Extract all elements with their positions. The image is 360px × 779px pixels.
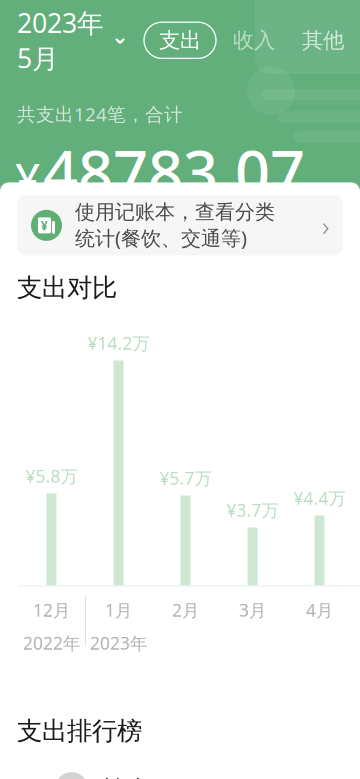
staticText: 2022年 (23, 631, 80, 654)
staticText: 2023年 (90, 631, 147, 654)
button[interactable]: 1 (0, 753, 360, 779)
staticText: 4月 (306, 598, 333, 621)
button[interactable]: 其他 (292, 27, 354, 53)
staticText: ¥5.8万 (25, 464, 77, 487)
staticText: 2月 (172, 598, 199, 621)
staticText: 支出对比 (17, 272, 117, 303)
staticText: ¥ (40, 216, 48, 234)
button[interactable]: 支出 (144, 22, 216, 58)
staticText: 支出排行榜 (17, 715, 142, 747)
staticText: ¥14.2万 (87, 331, 149, 354)
button[interactable]: ¥ (17, 195, 343, 255)
staticText: 使用记账本，查看分类统计(餐饮、交通等) (75, 200, 275, 251)
button[interactable]: 收入 (216, 27, 292, 53)
staticText: 2023年5月 (17, 5, 104, 76)
staticText: › (322, 207, 329, 244)
staticText: 48783.07 (43, 130, 305, 212)
staticText: ¥ (15, 149, 40, 207)
staticText: ¥4.4万 (293, 486, 345, 509)
staticText: ⌄ (111, 24, 129, 48)
staticText: 其他 (302, 27, 344, 53)
staticText: ¥5.7万 (159, 466, 211, 489)
staticText: 3月 (239, 598, 266, 621)
staticText: ¥3.7万 (226, 498, 278, 521)
staticText: 收入 (233, 27, 275, 53)
button[interactable]: 2023年5月 (17, 5, 129, 76)
staticText: 12月 (33, 598, 70, 621)
staticText: 1月 (105, 598, 132, 621)
staticText: 转账 (102, 775, 148, 779)
staticText: 支出 (159, 27, 201, 53)
staticText: 共支出124笔，合计 (17, 102, 183, 126)
